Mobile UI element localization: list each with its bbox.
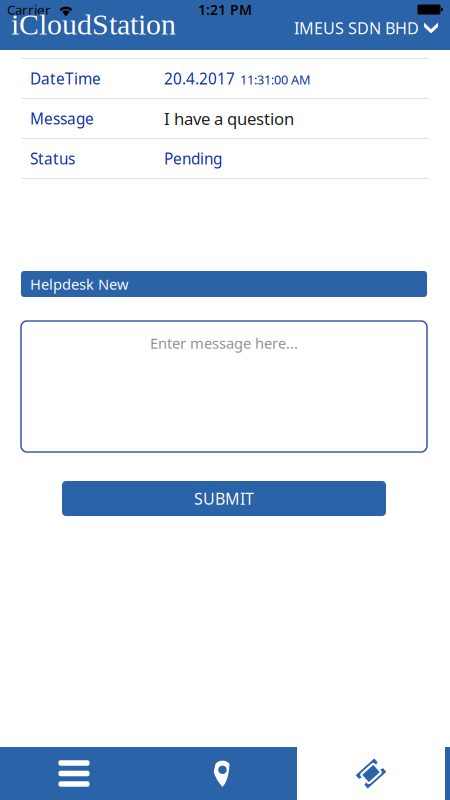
staticText: Status: [30, 148, 75, 169]
staticText: 1:21 PM: [198, 0, 252, 19]
staticText: DateTime: [30, 68, 101, 89]
staticText: Enter message here...: [150, 333, 298, 353]
staticText: Helpdesk New: [30, 274, 129, 294]
staticText: I have a question: [164, 107, 294, 130]
button[interactable]: Tickets: [297, 747, 445, 800]
button[interactable]: Locations: [148, 747, 297, 800]
button[interactable]: IMEUS SDN BHD: [294, 12, 438, 44]
staticText: 11:31:00 AM: [240, 71, 310, 88]
button[interactable]: SUBMIT: [62, 481, 386, 516]
staticText: iCloudStation: [11, 8, 176, 41]
staticText: SUBMIT: [194, 488, 254, 509]
staticText: IMEUS SDN BHD: [294, 17, 419, 39]
staticText: 20.4.2017: [164, 68, 235, 89]
staticText: Message: [30, 108, 94, 129]
staticText: Pending: [164, 148, 222, 169]
button[interactable]: Menu: [0, 747, 148, 800]
staticText: Carrier: [7, 0, 51, 19]
